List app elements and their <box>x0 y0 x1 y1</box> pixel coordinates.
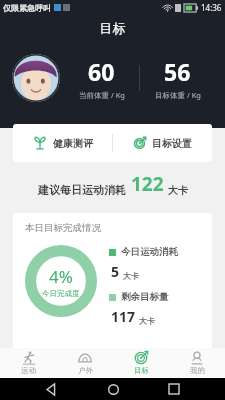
button[interactable]: 目标 <box>113 349 169 377</box>
staticText: 大卡 <box>123 271 139 281</box>
staticText: 建议每日运动消耗 <box>38 183 126 197</box>
staticText: 剩余目标量 <box>121 291 169 303</box>
staticText: 当前体重 / Kg <box>79 90 125 100</box>
staticText: 目标设置 <box>152 137 192 150</box>
staticText: 仅限紧急呼叫 <box>3 3 51 13</box>
button[interactable]: 运动 <box>0 349 57 377</box>
staticText: 户外 <box>78 366 93 375</box>
button[interactable]: 目标设置 <box>113 129 212 158</box>
staticText: 健康测评 <box>53 137 93 150</box>
staticText: 14:36 <box>201 2 222 13</box>
staticText: 56 <box>164 56 191 87</box>
button[interactable]: 我的 <box>169 349 225 377</box>
staticText: 运动 <box>21 366 36 375</box>
staticText: 大卡 <box>139 316 155 326</box>
staticText: 目标 <box>0 20 225 36</box>
button[interactable]: 健康测评 <box>13 128 112 158</box>
staticText: 我的 <box>190 366 205 375</box>
staticText: 5 <box>111 262 120 281</box>
staticText: 目标任务 <box>94 146 130 157</box>
staticText: 今日运动消耗 <box>121 246 178 258</box>
staticText: 122 <box>131 171 164 197</box>
button[interactable]: 户外 <box>57 349 113 377</box>
button[interactable]: Back <box>41 379 61 399</box>
staticText: 117 <box>111 307 136 326</box>
staticText: 本日目标完成情况 <box>25 222 101 234</box>
staticText: 目标体重 / Kg <box>155 90 201 100</box>
staticText: 目标 <box>134 366 149 375</box>
staticText: 4% <box>49 265 73 288</box>
staticText: 60 <box>88 56 115 87</box>
staticText: 大卡 <box>168 184 188 197</box>
staticText: 今日完成度 <box>42 289 80 298</box>
button[interactable]: Home <box>103 379 123 399</box>
button[interactable]: Recent apps <box>164 379 184 399</box>
